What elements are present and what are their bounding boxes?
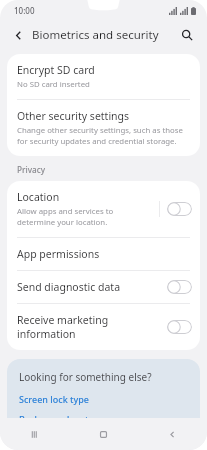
button[interactable]: Receive marketing information <box>7 304 200 350</box>
staticText: Biometrics and security <box>32 27 159 43</box>
staticText: App permissions <box>17 247 100 261</box>
button[interactable]: Back <box>138 418 207 450</box>
button[interactable]: Toggle, off <box>167 320 192 334</box>
button[interactable]: Toggle, off <box>167 280 192 294</box>
staticText: No SD card inserted <box>17 79 90 90</box>
button[interactable]: Back <box>7 24 29 46</box>
button[interactable]: Device care <box>19 433 188 438</box>
staticText: 10:00 <box>14 5 35 16</box>
button[interactable]: Toggle, off <box>167 202 192 216</box>
button[interactable]: Other security settings <box>7 100 200 156</box>
staticText: Change other security settings, such as … <box>17 125 190 147</box>
button[interactable]: Location <box>7 181 200 237</box>
staticText: Device care <box>19 433 69 438</box>
button[interactable]: Screen lock type <box>19 393 188 405</box>
button[interactable]: Recent apps <box>0 418 69 450</box>
button[interactable]: Encrypt SD card <box>7 54 200 99</box>
button[interactable]: App permissions <box>7 238 200 270</box>
button[interactable]: Send diagnostic data <box>7 271 200 303</box>
staticText: Looking for something else? <box>19 370 152 384</box>
button[interactable]: Home <box>69 418 138 450</box>
staticText: Privacy <box>17 164 46 175</box>
staticText: Encrypt SD card <box>17 63 95 77</box>
staticText: Other security settings <box>17 109 130 123</box>
button[interactable]: Search <box>175 23 199 47</box>
staticText: Receive marketing information <box>17 313 161 341</box>
button[interactable]: Backup and restore <box>19 413 188 425</box>
staticText: Screen lock type <box>19 393 89 405</box>
staticText: Allow apps and services to determine you… <box>17 206 153 228</box>
staticText: Send diagnostic data <box>17 280 121 294</box>
staticText: Backup and restore <box>19 413 103 425</box>
staticText: Location <box>17 190 60 204</box>
